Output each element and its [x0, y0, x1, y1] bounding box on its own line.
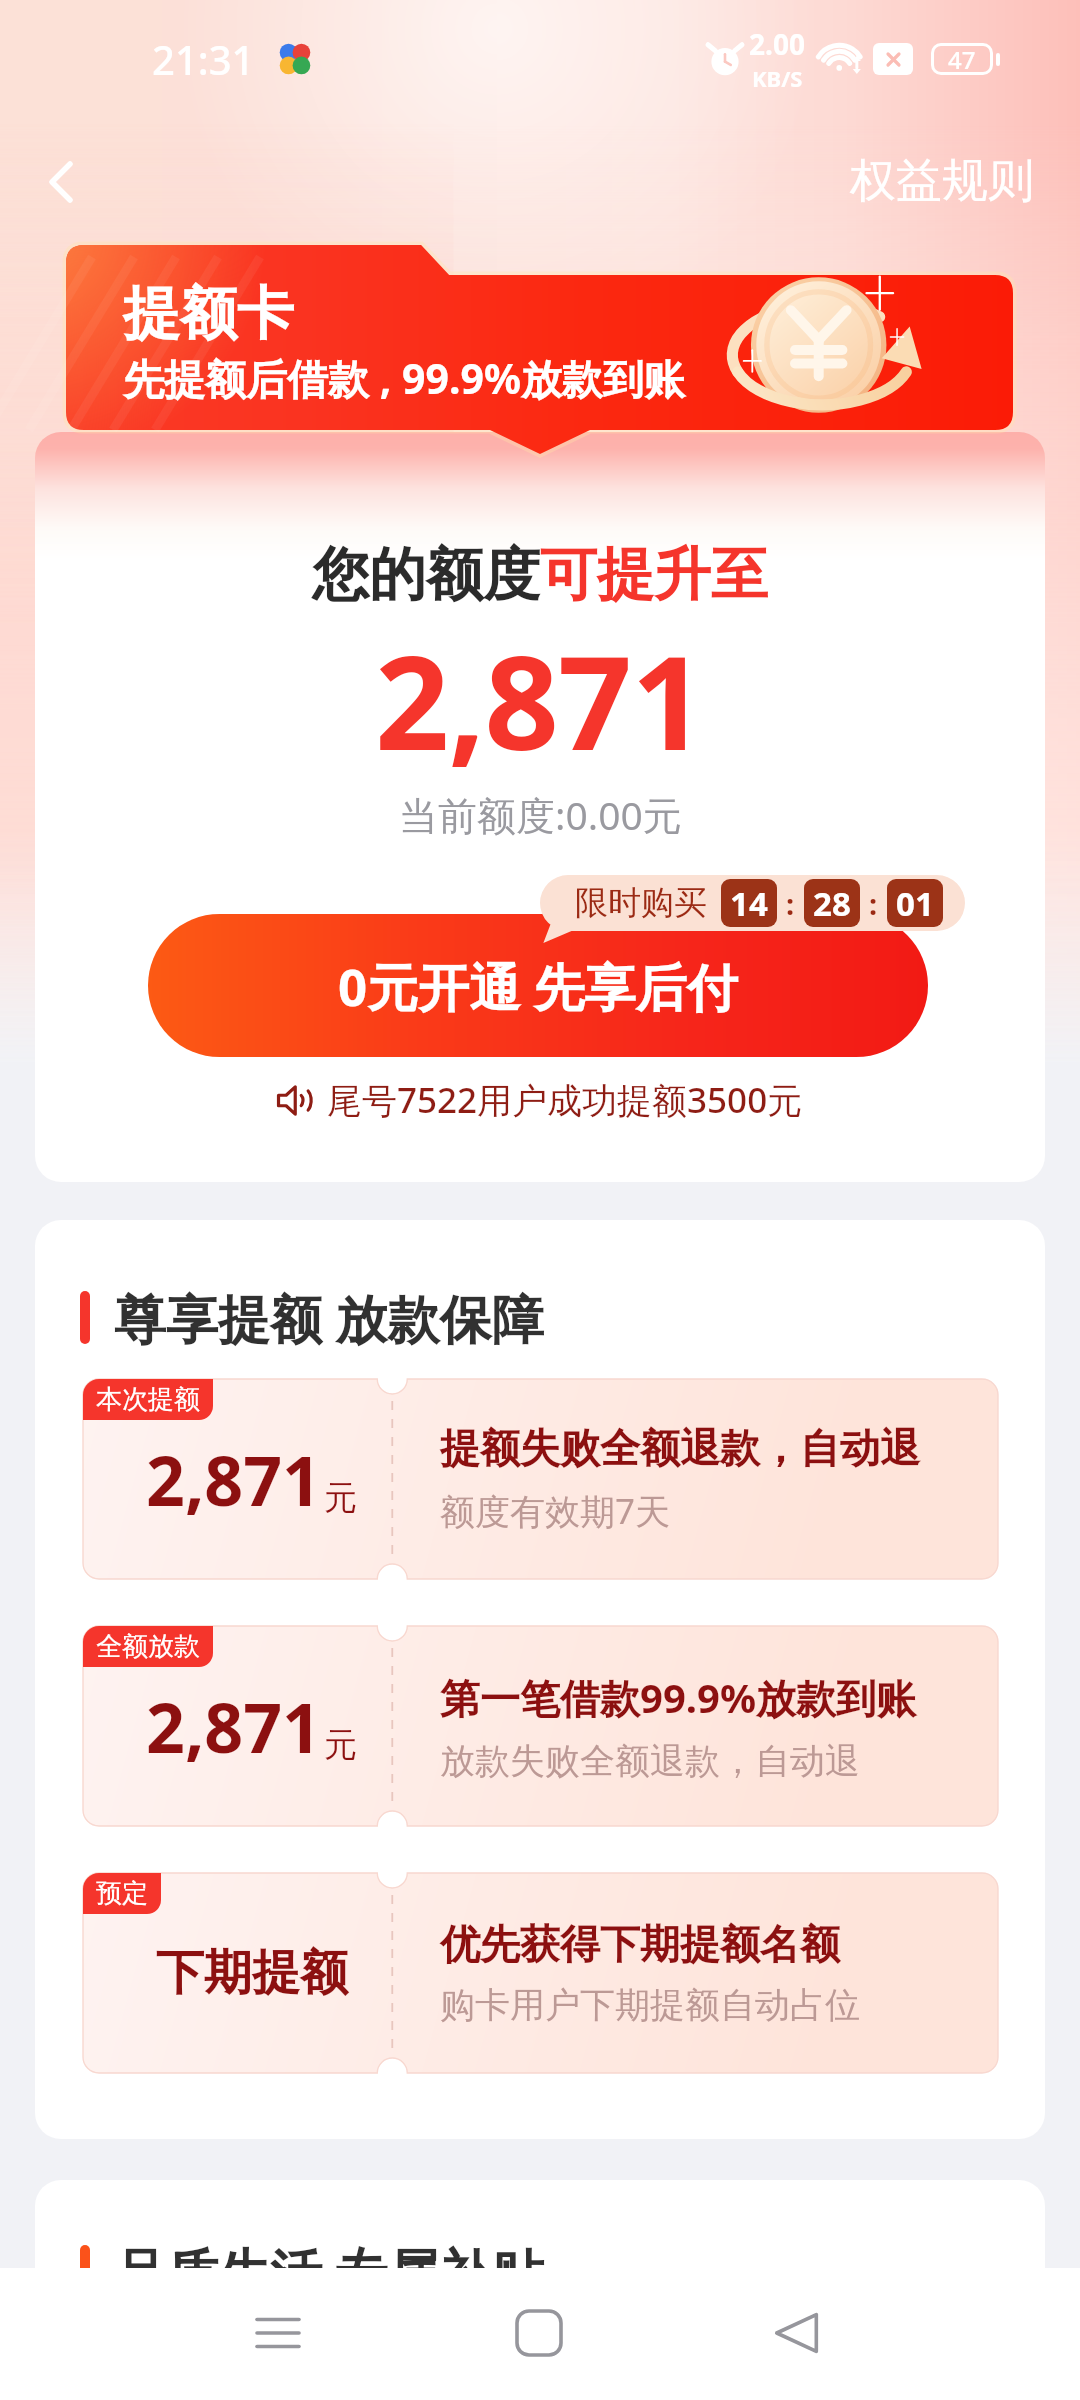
button[interactable]: 全额放款: [83, 1626, 998, 1826]
staticText: 权益规则: [850, 152, 1034, 210]
button[interactable]: Home: [484, 2278, 594, 2388]
staticText: 尊享提额 放款保障: [114, 1282, 544, 1353]
staticText: 第一笔借款99.9%放款到账: [440, 1670, 916, 1725]
staticText: 放款失败全额退款，自动退: [440, 1739, 860, 1783]
staticText: 品质生活 专属补贴: [114, 2236, 544, 2307]
staticText: :: [786, 884, 795, 923]
staticText: 14: [730, 881, 768, 926]
staticText: 2,871: [146, 1680, 321, 1773]
staticText: :: [869, 884, 878, 923]
staticText: 本次提额: [96, 1383, 200, 1416]
staticText: 优先获得下期提额名额: [440, 1919, 840, 1969]
staticText: 28: [813, 881, 851, 926]
button[interactable]: Recent apps: [223, 2278, 333, 2388]
staticText: 限时购买: [575, 882, 707, 924]
staticText: 可提升至: [540, 539, 768, 611]
button[interactable]: 本次提额: [83, 1379, 998, 1579]
staticText: 47: [948, 43, 976, 75]
button[interactable]: 权益规则: [850, 152, 1034, 210]
staticText: 全额放款: [96, 1630, 200, 1663]
button[interactable]: Back: [20, 140, 104, 224]
staticText: 先提额后借款 , 99.9%放款到账: [123, 350, 685, 406]
button[interactable]: 预定: [83, 1873, 998, 2073]
button[interactable]: 0元开通 先享后付: [148, 914, 928, 1057]
button[interactable]: Back: [742, 2278, 852, 2388]
staticText: 0元开通 先享后付: [338, 951, 738, 1021]
staticText: 元: [324, 1477, 357, 1519]
staticText: 提额卡: [123, 278, 294, 350]
staticText: 预定: [96, 1877, 148, 1910]
staticText: 额度有效期7天: [440, 1487, 671, 1535]
staticText: 您的额度: [312, 539, 540, 611]
staticText: 2.00: [749, 25, 805, 63]
staticText: 2,871: [146, 1433, 321, 1526]
staticText: 下期提额: [156, 1943, 348, 2003]
staticText: 尾号7522用户成功提额3500元: [327, 1076, 803, 1124]
staticText: 01: [896, 881, 934, 926]
staticText: KB/S: [752, 63, 803, 93]
staticText: 当前额度:0.00元: [399, 788, 682, 841]
staticText: 购卡用户下期提额自动占位: [440, 1983, 860, 2027]
staticText: 提额失败全额退款，自动退: [440, 1423, 920, 1473]
staticText: 元: [324, 1724, 357, 1766]
staticText: 21:31: [152, 32, 255, 86]
staticText: 2,871: [375, 611, 705, 788]
